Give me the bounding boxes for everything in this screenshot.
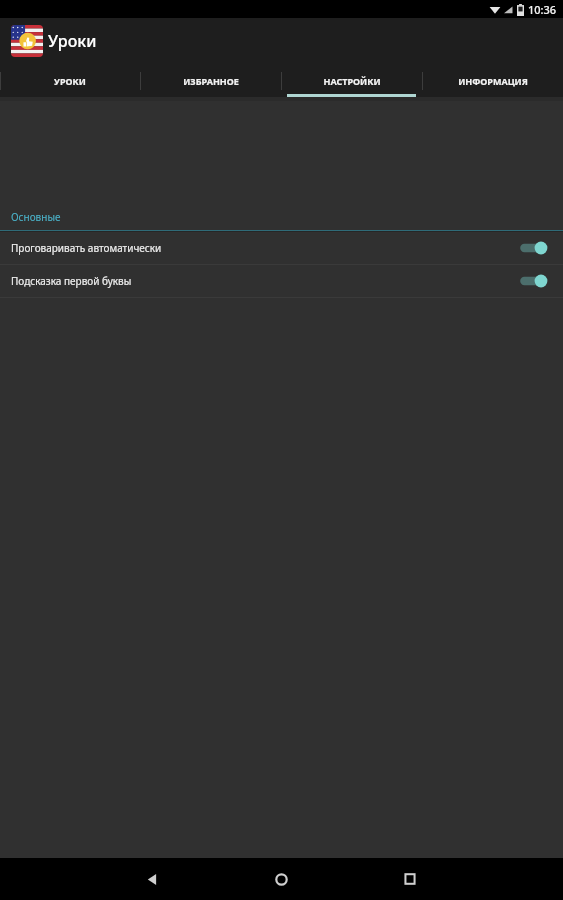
button[interactable]: ИЗБРАННОЕ	[140, 64, 281, 97]
staticText: УРОКИ	[54, 75, 86, 87]
button[interactable]: Toggle	[517, 240, 549, 256]
staticText: ИЗБРАННОЕ	[183, 75, 239, 87]
button[interactable]: НАСТРОЙКИ	[281, 64, 422, 97]
button[interactable]: Home	[259, 858, 303, 900]
button[interactable]: Проговаривать автоматически	[0, 232, 563, 264]
button[interactable]: Toggle	[517, 273, 549, 289]
button[interactable]: ИНФОРМАЦИЯ	[422, 64, 563, 97]
staticText: НАСТРОЙКИ	[323, 75, 381, 87]
staticText: Подсказка первой буквы	[11, 274, 517, 288]
button[interactable]: УРОКИ	[0, 64, 140, 97]
staticText: Проговаривать автоматически	[11, 241, 517, 255]
staticText: Уроки	[48, 30, 97, 52]
staticText: 10:36	[528, 2, 557, 17]
staticText: Основные	[11, 210, 61, 224]
button[interactable]: Recent apps	[388, 858, 432, 900]
staticText: ИНФОРМАЦИЯ	[458, 75, 528, 87]
button[interactable]: Подсказка первой буквы	[0, 265, 563, 297]
button[interactable]: Back	[130, 858, 174, 900]
